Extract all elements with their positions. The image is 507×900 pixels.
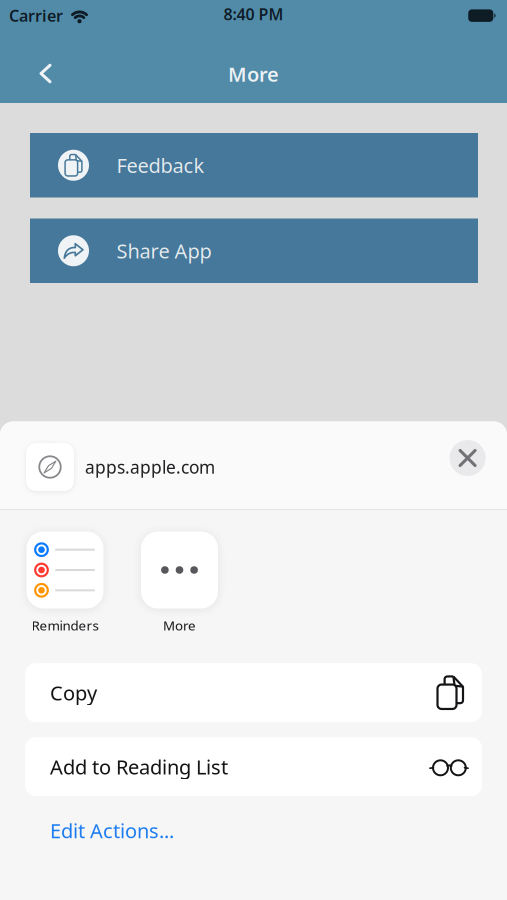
button[interactable]: Add to Reading List: [25, 737, 482, 796]
button[interactable]: Edit Actions...: [50, 817, 174, 844]
button[interactable]: Close: [450, 440, 486, 476]
staticText: Carrier: [9, 5, 63, 26]
button[interactable]: Back: [25, 51, 65, 95]
button[interactable]: Copy: [25, 663, 482, 722]
staticText: apps.apple.com: [85, 455, 215, 478]
staticText: Reminders: [31, 616, 98, 634]
staticText: Copy: [50, 679, 97, 706]
button[interactable]: Reminders: [26, 531, 103, 634]
button[interactable]: More: [141, 531, 218, 634]
staticText: More: [163, 616, 196, 634]
staticText: 8:40 PM: [223, 3, 283, 25]
staticText: Edit Actions...: [50, 817, 174, 844]
staticText: Share App: [116, 237, 211, 264]
staticText: Add to Reading List: [50, 753, 228, 780]
staticText: Feedback: [116, 152, 204, 179]
button[interactable]: Feedback: [30, 133, 478, 197]
staticText: More: [228, 61, 279, 87]
button[interactable]: Share App: [30, 218, 478, 283]
